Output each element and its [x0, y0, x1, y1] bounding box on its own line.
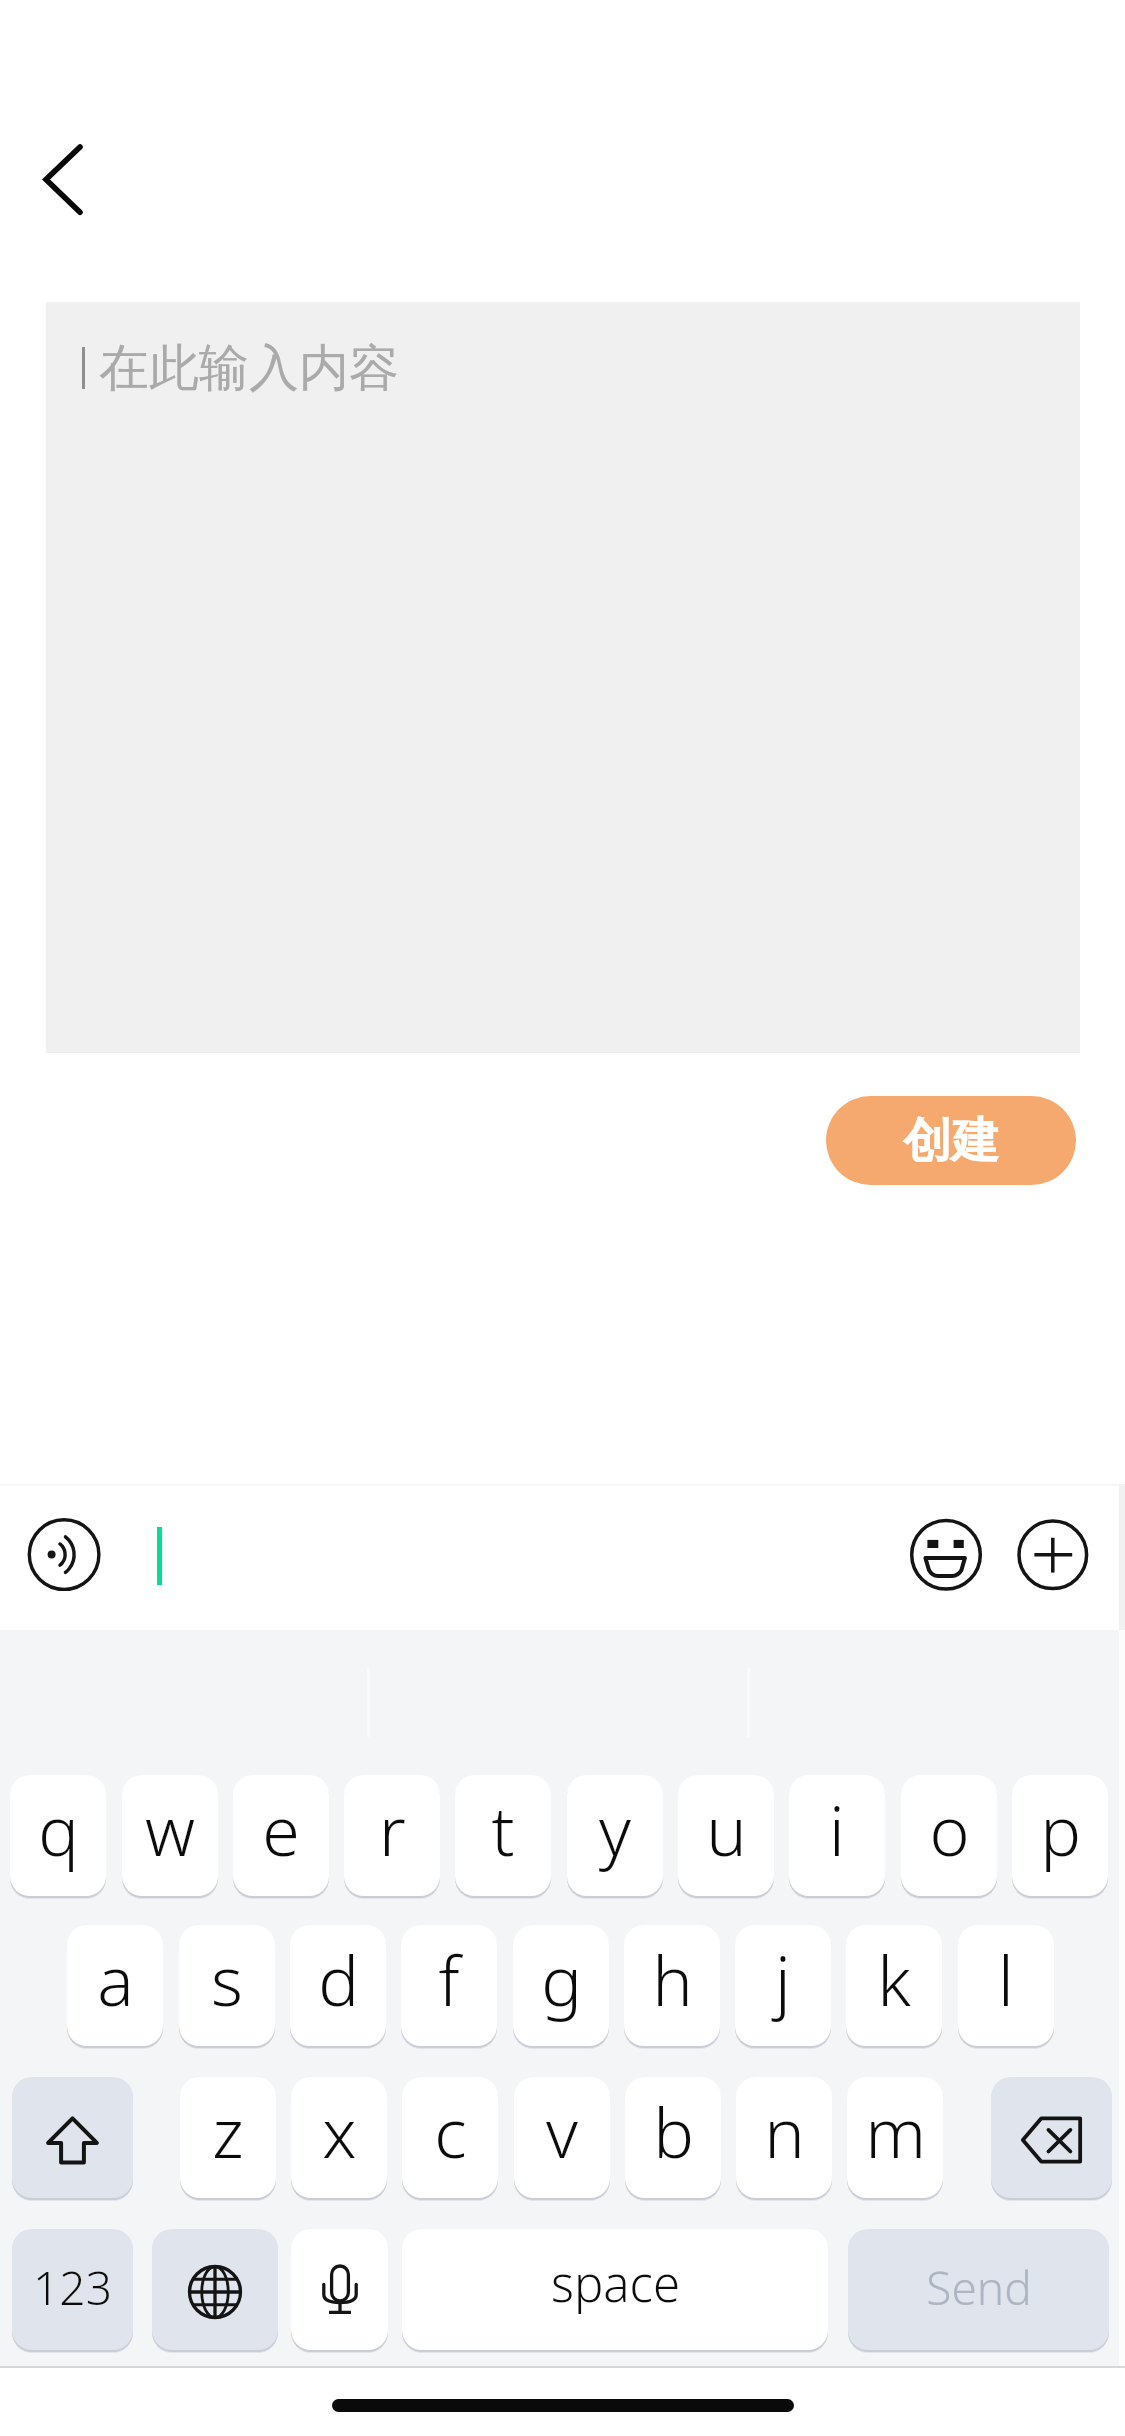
button[interactable]: i: [789, 1775, 885, 1896]
button[interactable]: t: [455, 1775, 551, 1896]
staticText: v: [546, 2085, 578, 2178]
button[interactable]: k: [846, 1925, 942, 2046]
button[interactable]: z: [180, 2077, 276, 2198]
button[interactable]: a: [67, 1925, 163, 2046]
staticText: f: [438, 1933, 460, 2026]
staticText: 创建: [903, 1111, 999, 1171]
button[interactable]: l: [958, 1925, 1054, 2046]
button[interactable]: Emoji: [908, 1517, 984, 1593]
staticText: l: [998, 1933, 1014, 2026]
button[interactable]: c: [402, 2077, 498, 2198]
staticText: i: [829, 1783, 845, 1876]
button[interactable]: j: [735, 1925, 831, 2046]
button[interactable]: e: [233, 1775, 329, 1896]
button[interactable]: Change keyboard language: [152, 2229, 278, 2350]
staticText: t: [491, 1783, 515, 1876]
staticText: d: [318, 1933, 359, 2026]
staticText: m: [865, 2085, 926, 2178]
button[interactable]: d: [290, 1925, 386, 2046]
button[interactable]: Voice input: [26, 1516, 102, 1592]
button[interactable]: 在此输入内容: [46, 302, 1080, 1053]
button[interactable]: 123: [12, 2229, 133, 2350]
staticText: n: [764, 2085, 805, 2178]
staticText: q: [38, 1783, 79, 1876]
staticText: o: [929, 1783, 970, 1876]
button[interactable]: u: [678, 1775, 774, 1896]
button[interactable]: Backspace: [991, 2077, 1112, 2198]
button[interactable]: w: [122, 1775, 218, 1896]
staticText: Send: [926, 2256, 1032, 2319]
button[interactable]: y: [567, 1775, 663, 1896]
staticText: w: [145, 1783, 195, 1876]
button[interactable]: Back: [14, 140, 110, 236]
staticText: r: [379, 1783, 406, 1876]
staticText: p: [1040, 1783, 1081, 1876]
button[interactable]: 创建: [826, 1096, 1076, 1185]
button[interactable]: f: [401, 1925, 497, 2046]
button[interactable]: n: [736, 2077, 832, 2198]
staticText: u: [706, 1783, 747, 1876]
staticText: 在此输入内容: [99, 337, 399, 400]
button[interactable]: g: [513, 1925, 609, 2046]
staticText: a: [97, 1933, 134, 2026]
staticText: x: [322, 2085, 357, 2178]
staticText: 123: [33, 2256, 112, 2319]
staticText: c: [434, 2085, 467, 2178]
staticText: space: [551, 2250, 680, 2317]
button[interactable]: x: [291, 2077, 387, 2198]
button[interactable]: v: [514, 2077, 610, 2198]
button[interactable]: h: [624, 1925, 720, 2046]
button[interactable]: m: [847, 2077, 943, 2198]
button[interactable]: b: [625, 2077, 721, 2198]
button[interactable]: Send: [848, 2229, 1109, 2350]
staticText: e: [262, 1783, 300, 1876]
staticText: s: [211, 1933, 243, 2026]
staticText: k: [877, 1933, 911, 2026]
button[interactable]: r: [344, 1775, 440, 1896]
staticText: h: [652, 1933, 693, 2026]
button[interactable]: o: [901, 1775, 997, 1896]
staticText: g: [541, 1933, 582, 2026]
button[interactable]: q: [10, 1775, 106, 1896]
button[interactable]: p: [1012, 1775, 1108, 1896]
staticText: z: [212, 2085, 244, 2178]
staticText: j: [775, 1933, 791, 2026]
staticText: b: [653, 2085, 694, 2178]
button[interactable]: space: [402, 2229, 828, 2350]
button[interactable]: s: [179, 1925, 275, 2046]
button[interactable]: Add: [1015, 1517, 1091, 1593]
button[interactable]: Voice typing: [291, 2229, 388, 2350]
button[interactable]: Shift: [12, 2077, 133, 2198]
staticText: y: [599, 1783, 631, 1876]
